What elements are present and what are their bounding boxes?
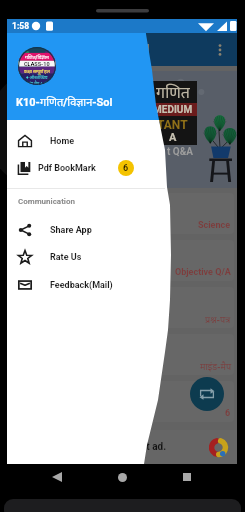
- staticText: A: [169, 131, 177, 144]
- staticText: t Q&A: [167, 146, 194, 158]
- staticText: Share App: [50, 225, 92, 236]
- button[interactable]: Home: [7, 127, 159, 155]
- button[interactable]: Shuffle: [190, 377, 224, 411]
- button[interactable]: Feedback(Mail): [7, 271, 159, 299]
- staticText: + माइंड मैप + नोट्स: [21, 80, 54, 85]
- staticText: MEDIUM: [153, 104, 193, 116]
- staticText: 6: [225, 408, 231, 419]
- button[interactable]: माइंड-मैप: [11, 334, 234, 375]
- button[interactable]: Pdf BookMark: [7, 154, 162, 182]
- staticText: Science: [198, 220, 231, 231]
- staticText: माइंड-मैप: [200, 360, 231, 372]
- staticText: गणित: [156, 81, 190, 102]
- button[interactable]: गणित: [148, 81, 197, 145]
- button[interactable]: Science: [11, 193, 234, 234]
- staticText: K10-गणित/विज्ञान-Sol: [16, 94, 113, 109]
- staticText: CLASS-10: [24, 61, 50, 67]
- staticText: गणित/विज्ञान: [25, 54, 49, 61]
- staticText: 1:58: [12, 21, 30, 31]
- staticText: Pdf BookMark: [38, 163, 96, 174]
- staticText: प्रश्न-पत्र: [205, 313, 231, 325]
- staticText: 6: [123, 163, 129, 174]
- staticText: TANT: [157, 118, 188, 132]
- button[interactable]: Home: [111, 466, 133, 488]
- button[interactable]: More options: [209, 39, 231, 61]
- button[interactable]: Share App: [7, 216, 159, 244]
- button[interactable]: Back: [46, 466, 68, 488]
- staticText: Communication: [18, 197, 75, 206]
- button[interactable]: 6: [11, 381, 234, 422]
- staticText: Rate Us: [50, 252, 82, 263]
- staticText: कक्षा सम्पूर्ण हल: [24, 68, 50, 74]
- button[interactable]: प्रश्न-पत्र: [11, 287, 234, 328]
- button[interactable]: O test ad.: [7, 430, 237, 464]
- staticText: O test ad.: [123, 441, 167, 453]
- staticText: Objective Q/A: [175, 267, 231, 278]
- staticText: Home: [50, 136, 75, 147]
- staticText: Feedback(Mail): [50, 280, 113, 291]
- button[interactable]: Rate Us: [7, 243, 159, 271]
- button[interactable]: Recents: [176, 466, 198, 488]
- button[interactable]: Objective Q/A: [11, 240, 234, 281]
- staticText: + ऑब्जेक्टिव: [26, 74, 48, 80]
